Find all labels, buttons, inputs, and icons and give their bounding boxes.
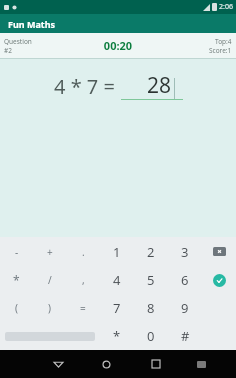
- staticText: *: [13, 272, 20, 288]
- staticText: 6: [181, 271, 189, 289]
- staticText: (: [15, 301, 18, 315]
- button[interactable]: 4: [100, 266, 134, 294]
- button[interactable]: 7: [100, 294, 134, 322]
- button[interactable]: 6: [168, 266, 202, 294]
- button[interactable]: 28: [121, 71, 183, 100]
- staticText: 1: [113, 243, 121, 261]
- button[interactable]: Home: [82, 350, 131, 378]
- button[interactable]: 0: [134, 322, 168, 350]
- staticText: /: [48, 273, 52, 287]
- staticText: 3: [181, 243, 189, 261]
- button[interactable]: Switch keyboard: [180, 350, 222, 378]
- button[interactable]: ,: [66, 266, 100, 294]
- staticText: 7: [113, 299, 121, 317]
- button[interactable]: 5: [134, 266, 168, 294]
- button[interactable]: 8: [134, 294, 168, 322]
- staticText: +: [47, 245, 53, 259]
- button[interactable]: (: [0, 294, 33, 322]
- button[interactable]: ): [33, 294, 66, 322]
- staticText: -: [15, 245, 19, 259]
- staticText: 8: [147, 299, 155, 317]
- staticText: 2:06: [219, 2, 233, 12]
- button[interactable]: .: [66, 237, 100, 266]
- button[interactable]: -: [0, 237, 33, 266]
- staticText: Fun Maths: [8, 18, 56, 30]
- button[interactable]: Recent apps: [131, 350, 180, 378]
- staticText: Score:1: [209, 46, 232, 55]
- staticText: 4 * 7 =: [54, 73, 115, 100]
- button[interactable]: 9: [168, 294, 202, 322]
- staticText: ,: [82, 273, 85, 287]
- button[interactable]: Enter: [213, 274, 226, 287]
- staticText: .: [82, 245, 85, 259]
- staticText: 4: [113, 271, 121, 289]
- button[interactable]: +: [33, 237, 66, 266]
- staticText: 2: [147, 243, 155, 261]
- button[interactable]: =: [66, 294, 100, 322]
- button[interactable]: Fun Maths: [0, 14, 236, 33]
- button[interactable]: 1: [100, 237, 134, 266]
- staticText: 9: [181, 299, 189, 317]
- staticText: Top:4: [215, 37, 232, 46]
- staticText: #: [181, 327, 190, 345]
- staticText: 28: [147, 71, 172, 100]
- staticText: 0: [147, 327, 155, 345]
- button[interactable]: 3: [168, 237, 202, 266]
- staticText: =: [80, 301, 86, 315]
- button[interactable]: Backspace: [213, 247, 226, 256]
- staticText: 5: [147, 271, 155, 289]
- button[interactable]: /: [33, 266, 66, 294]
- staticText: *: [113, 327, 121, 345]
- button[interactable]: *: [100, 322, 134, 350]
- button[interactable]: 2: [134, 237, 168, 266]
- staticText: 00:20: [80, 38, 156, 53]
- button[interactable]: *: [0, 266, 33, 294]
- button[interactable]: Back: [34, 350, 82, 378]
- staticText: #2: [4, 46, 12, 55]
- staticText: ): [48, 301, 51, 315]
- staticText: Question: [4, 37, 32, 46]
- button[interactable]: #: [168, 322, 202, 350]
